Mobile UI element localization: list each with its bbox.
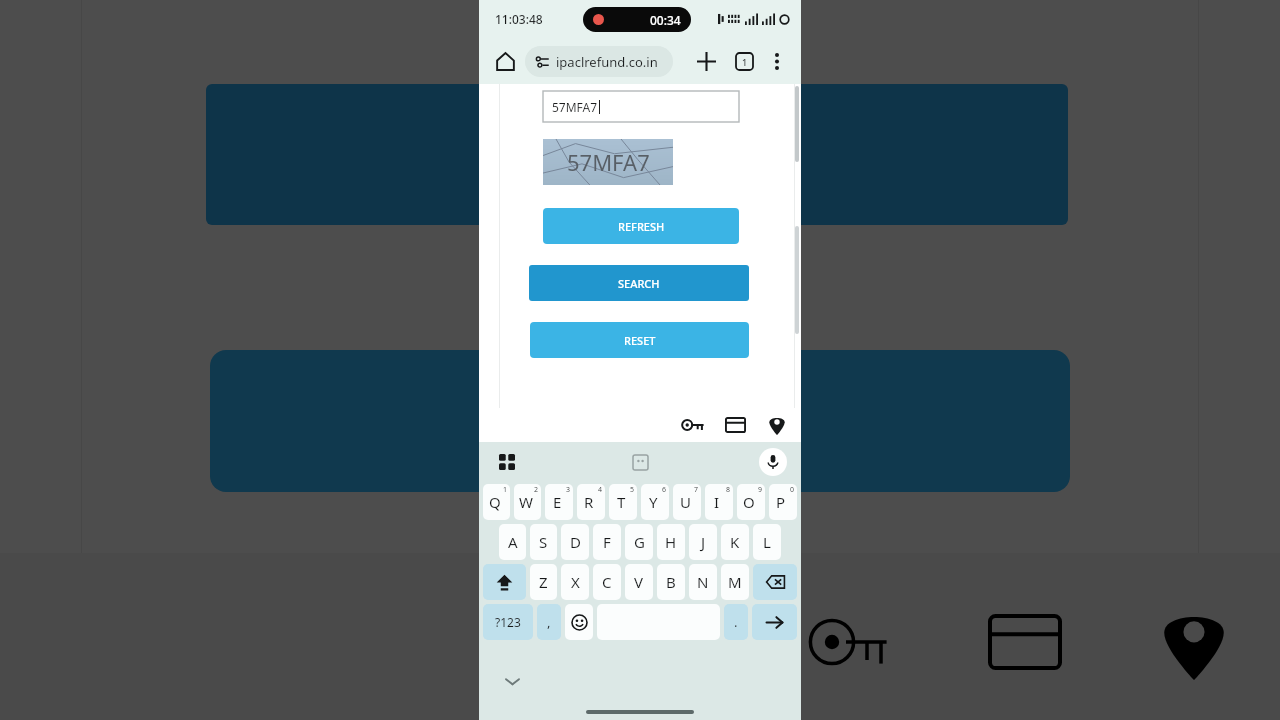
button[interactable]: U: [673, 484, 701, 520]
staticText: G: [634, 532, 645, 552]
button[interactable]: Symbols: [483, 604, 533, 640]
button[interactable]: P: [769, 484, 797, 520]
button[interactable]: Passwords: [677, 409, 709, 441]
button[interactable]: O: [737, 484, 765, 520]
staticText: A: [508, 532, 518, 552]
button[interactable]: J: [689, 524, 717, 560]
staticText: U: [680, 492, 691, 512]
staticText: 7: [694, 485, 699, 495]
button[interactable]: E: [545, 484, 573, 520]
staticText: J: [701, 532, 706, 552]
staticText: 9: [758, 485, 763, 495]
button[interactable]: Voice input: [759, 448, 787, 476]
button[interactable]: Stickers: [626, 448, 654, 476]
button[interactable]: Emoji: [565, 604, 593, 640]
button[interactable]: 57MFA7: [543, 91, 739, 122]
staticText: Y: [649, 492, 658, 512]
staticText: REFRESH: [618, 219, 665, 234]
button[interactable]: Z: [530, 564, 557, 600]
button[interactable]: F: [593, 524, 621, 560]
staticText: 11:03:48: [495, 11, 543, 27]
staticText: 3: [566, 485, 571, 495]
button[interactable]: A: [499, 524, 526, 560]
staticText: V: [634, 572, 644, 592]
staticText: X: [571, 572, 580, 592]
staticText: 57MFA7: [567, 147, 650, 177]
staticText: ,: [547, 613, 551, 631]
button[interactable]: SEARCH: [529, 265, 749, 301]
button[interactable]: S: [530, 524, 557, 560]
staticText: 4: [598, 485, 603, 495]
staticText: 1: [503, 485, 508, 495]
staticText: B: [666, 572, 676, 592]
staticText: 5: [630, 485, 635, 495]
button[interactable]: Backspace: [753, 564, 797, 600]
staticText: 6: [662, 485, 667, 495]
button[interactable]: K: [721, 524, 749, 560]
staticText: .: [734, 613, 738, 631]
button[interactable]: L: [753, 524, 781, 560]
staticText: K: [730, 532, 740, 552]
staticText: M: [728, 572, 742, 592]
button[interactable]: B: [657, 564, 685, 600]
staticText: L: [763, 532, 771, 552]
button[interactable]: Enter: [752, 604, 797, 640]
button[interactable]: H: [657, 524, 685, 560]
button[interactable]: C: [593, 564, 621, 600]
button[interactable]: Tabs: [728, 45, 760, 77]
button[interactable]: M: [721, 564, 749, 600]
button[interactable]: I: [705, 484, 733, 520]
button[interactable]: Q: [483, 484, 510, 520]
staticText: Q: [489, 492, 501, 512]
staticText: 00:34: [650, 12, 681, 28]
staticText: R: [584, 492, 594, 512]
button[interactable]: ipaclrefund.co.in: [525, 46, 673, 77]
button[interactable]: Addresses: [761, 409, 793, 441]
staticText: Z: [539, 572, 548, 592]
button[interactable]: Keyboard toolbar: [493, 448, 521, 476]
staticText: F: [603, 532, 611, 552]
staticText: P: [776, 492, 786, 512]
staticText: C: [602, 572, 612, 592]
staticText: ?123: [495, 614, 521, 630]
staticText: N: [697, 572, 709, 592]
staticText: T: [617, 492, 626, 512]
staticText: SEARCH: [618, 276, 660, 291]
staticText: RESET: [624, 333, 656, 348]
staticText: O: [743, 492, 755, 512]
staticText: D: [570, 532, 581, 552]
staticText: ipaclrefund.co.in: [556, 53, 658, 71]
button[interactable]: V: [625, 564, 653, 600]
staticText: H: [665, 532, 677, 552]
staticText: E: [553, 492, 562, 512]
staticText: 8: [726, 485, 731, 495]
button[interactable]: More options: [762, 46, 792, 76]
button[interactable]: Period: [724, 604, 748, 640]
staticText: 57MFA7: [552, 99, 598, 115]
button[interactable]: D: [561, 524, 589, 560]
staticText: 0: [790, 485, 795, 495]
staticText: 1: [742, 56, 748, 68]
button[interactable]: W: [514, 484, 541, 520]
button[interactable]: G: [625, 524, 653, 560]
staticText: I: [714, 492, 720, 512]
button[interactable]: X: [561, 564, 589, 600]
button[interactable]: Comma: [537, 604, 561, 640]
button[interactable]: Y: [641, 484, 669, 520]
button[interactable]: Payment methods: [719, 409, 751, 441]
staticText: 2: [534, 485, 539, 495]
button[interactable]: REFRESH: [543, 208, 739, 244]
button[interactable]: Hide keyboard: [500, 669, 524, 693]
staticText: S: [539, 532, 548, 552]
button[interactable]: New tab: [690, 45, 722, 77]
button[interactable]: RESET: [530, 322, 749, 358]
button[interactable]: N: [689, 564, 717, 600]
button[interactable]: T: [609, 484, 637, 520]
button[interactable]: Shift: [483, 564, 526, 600]
button[interactable]: R: [577, 484, 605, 520]
button[interactable]: Home: [488, 44, 522, 78]
staticText: W: [519, 492, 533, 512]
